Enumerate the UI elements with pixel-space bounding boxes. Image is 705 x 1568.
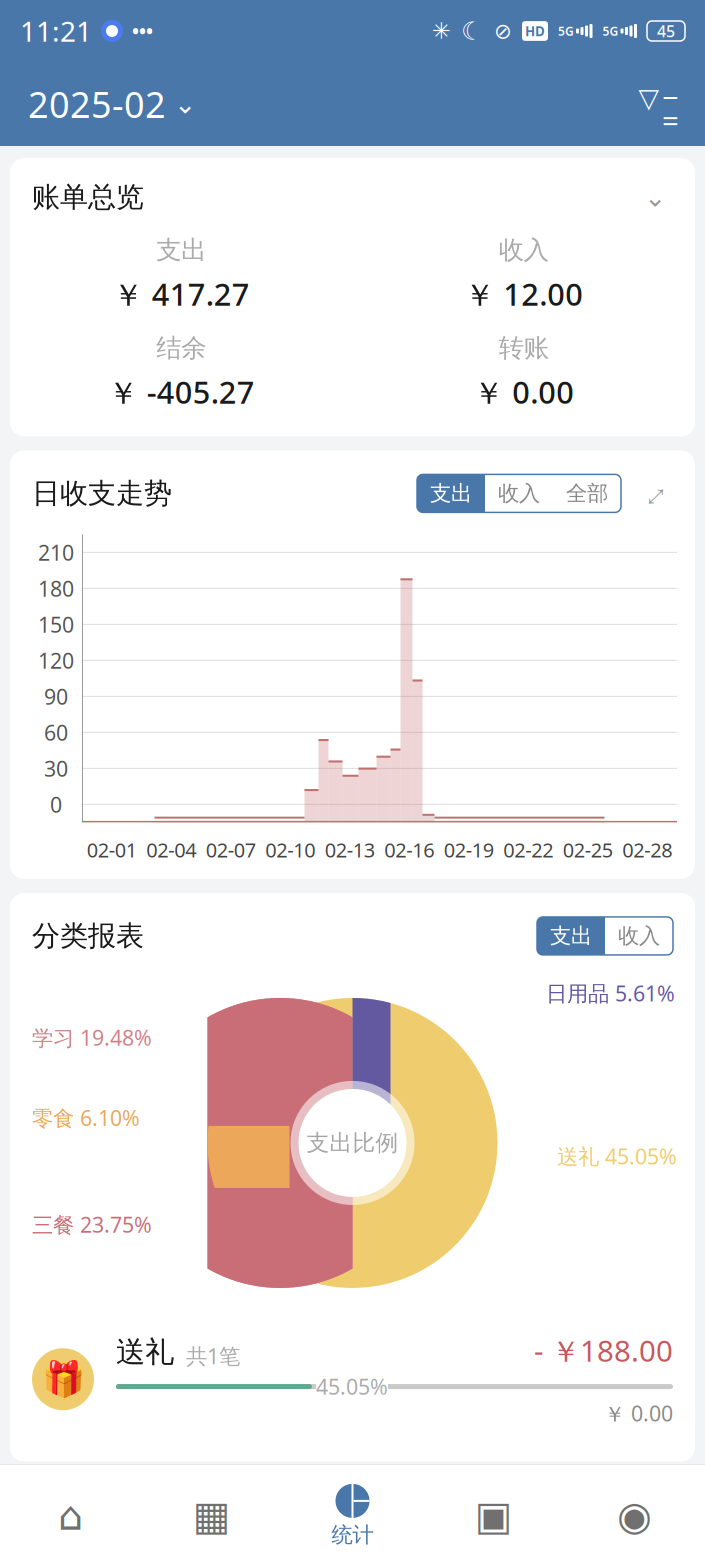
staticText: 30 (44, 754, 68, 782)
staticText: 零食 6.10% (32, 1104, 140, 1132)
staticText: ￥ 417.27 (113, 273, 250, 314)
staticText: 收入 (498, 480, 540, 506)
staticText: ◉ (617, 1493, 652, 1539)
staticText: 02-19 (444, 836, 494, 863)
staticText: 210 (38, 538, 74, 566)
staticText: 共1笔 (186, 1342, 240, 1370)
staticText: 日收支走势 (32, 476, 172, 511)
staticText: 结余 (156, 332, 206, 363)
staticText: HD (525, 22, 545, 40)
staticText: ☾ (461, 17, 484, 45)
staticText: ￥ 0.00 (604, 1399, 673, 1427)
staticText: 150 (38, 610, 74, 638)
staticText: 5G (558, 23, 574, 39)
staticText: 🎁 (41, 1359, 84, 1399)
staticText: 02-28 (622, 836, 672, 863)
staticText: ⌂ (58, 1493, 83, 1539)
button[interactable]: 支出 (537, 917, 605, 955)
staticText: 02-25 (563, 836, 613, 863)
button[interactable]: Calendar (141, 1464, 282, 1568)
staticText: 支出比例 (306, 1129, 398, 1157)
button[interactable]: Assets (423, 1464, 564, 1568)
staticText: 送礼 (116, 1334, 174, 1370)
button[interactable]: Collapse overview (637, 182, 673, 212)
staticText: 02-10 (265, 836, 315, 863)
staticText: 转账 (499, 332, 549, 363)
staticText: 02-01 (87, 836, 137, 863)
staticText: ✳ (432, 18, 451, 44)
button[interactable]: 🎁 (10, 1319, 695, 1439)
staticText: 02-22 (503, 836, 553, 863)
staticText: ▣ (474, 1493, 512, 1539)
staticText: 02-07 (206, 836, 256, 863)
button[interactable]: 收入 (605, 917, 673, 955)
staticText: 送礼 45.05% (557, 1142, 677, 1170)
staticText: 收入 (618, 923, 660, 949)
button[interactable]: Expand chart (639, 476, 673, 510)
button[interactable]: 2025-02 (24, 74, 200, 134)
staticText: ⌄ (174, 89, 196, 119)
staticText: 02-04 (146, 836, 196, 863)
staticText: ⌄ (644, 182, 666, 212)
staticText: ••• (132, 19, 153, 43)
staticText: 60 (44, 718, 68, 746)
staticText: 支出 (156, 234, 206, 265)
staticText: 支出 (550, 923, 592, 949)
staticText: 账单总览 (32, 180, 144, 214)
staticText: 90 (44, 682, 68, 710)
staticText: 45 (657, 20, 675, 42)
button[interactable]: 统计 (282, 1464, 423, 1568)
staticText: 三餐 23.75% (32, 1210, 152, 1239)
staticText: 02-16 (384, 836, 434, 863)
button[interactable]: Filter (635, 81, 681, 127)
staticText: 统计 (331, 1522, 373, 1548)
staticText: ▦ (192, 1493, 230, 1539)
staticText: ⊘ (494, 19, 512, 43)
button[interactable]: Home (0, 1464, 141, 1568)
staticText: 11:21 (20, 12, 92, 50)
staticText: 45.05% (316, 1372, 388, 1401)
button[interactable]: Profile (564, 1464, 705, 1568)
staticText: ⤢ (645, 464, 667, 523)
button[interactable]: 全部 (553, 474, 621, 512)
staticText: 180 (38, 574, 74, 602)
button[interactable]: 支出 (417, 474, 485, 512)
staticText: 02-13 (325, 836, 375, 863)
staticText: 全部 (566, 480, 608, 506)
staticText: 5G (602, 23, 618, 39)
staticText: ▽ (638, 83, 659, 113)
staticText: 学习 19.48% (32, 1023, 152, 1052)
staticText: ￥ -405.27 (108, 371, 255, 412)
staticText: 日用品 5.61% (546, 979, 675, 1007)
staticText: 0 (50, 790, 62, 818)
staticText: 收入 (499, 234, 549, 265)
staticText: ￥ 0.00 (473, 371, 574, 412)
button[interactable]: 收入 (485, 474, 553, 512)
staticText: 120 (38, 646, 74, 674)
staticText: ￥ 12.00 (464, 273, 583, 314)
staticText: 分类报表 (32, 919, 144, 953)
staticText: 支出 (430, 480, 472, 506)
staticText: 2025-02 (28, 80, 166, 128)
staticText: - ￥188.00 (534, 1331, 673, 1370)
